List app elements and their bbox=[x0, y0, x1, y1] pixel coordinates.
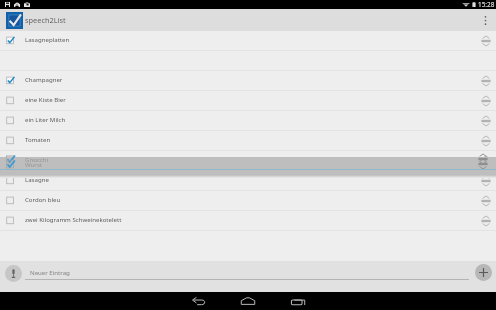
staticText: 15:28 bbox=[478, 0, 495, 9]
button[interactable]: Tomaten bbox=[0, 131, 496, 151]
staticText: Tomaten bbox=[25, 135, 51, 143]
staticText: Cordon bleu bbox=[25, 195, 61, 203]
staticText: Champagner bbox=[25, 75, 63, 83]
button[interactable]: ein Liter Milch bbox=[0, 111, 496, 131]
button[interactable]: Reorder item bbox=[479, 113, 493, 129]
button[interactable]: Reorder item bbox=[479, 213, 493, 229]
staticText: ein Liter Milch bbox=[25, 115, 66, 123]
button[interactable]: Reorder item bbox=[479, 193, 493, 209]
staticText: Wurst bbox=[25, 160, 43, 168]
button[interactable]: Reorder item bbox=[479, 153, 493, 169]
staticText: Lasagne bbox=[25, 175, 49, 183]
staticText: Neuer Eintrag bbox=[30, 268, 70, 276]
button[interactable]: Lasagneplatten bbox=[0, 31, 496, 51]
button[interactable]: eine Kiste Bier bbox=[0, 91, 496, 111]
staticText: eine Kiste Bier bbox=[25, 95, 66, 103]
button[interactable]: Voice input bbox=[5, 265, 22, 282]
button[interactable]: Reorder item bbox=[479, 93, 493, 109]
button[interactable]: Cordon bleu bbox=[0, 191, 496, 211]
button[interactable]: Add item bbox=[475, 264, 492, 281]
button[interactable]: Back bbox=[186, 292, 210, 310]
staticText: speech2List bbox=[25, 15, 66, 25]
staticText: Gnocchi bbox=[25, 155, 49, 163]
button[interactable]: More options bbox=[474, 9, 496, 31]
button[interactable]: Reorder item bbox=[0, 151, 496, 171]
button[interactable]: Lasagne bbox=[0, 171, 496, 191]
button[interactable]: Champagner bbox=[0, 71, 496, 91]
staticText: zwei Kilogramm Schweinekotelett bbox=[25, 215, 122, 223]
button[interactable]: Reorder item bbox=[479, 133, 493, 149]
button[interactable]: Reorder item bbox=[479, 73, 493, 89]
staticText: Lasagneplatten bbox=[25, 35, 70, 43]
button[interactable]: Reorder item bbox=[479, 33, 493, 49]
button[interactable]: zwei Kilogramm Schweinekotelett bbox=[0, 211, 496, 231]
button[interactable]: Reorder item bbox=[479, 173, 493, 189]
button[interactable]: Home bbox=[236, 292, 260, 310]
button[interactable]: Recent apps bbox=[286, 292, 310, 310]
